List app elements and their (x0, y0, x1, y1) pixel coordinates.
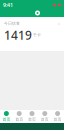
staticText: 首页 (15, 117, 23, 122)
staticText: 首页 (41, 117, 49, 122)
staticText: 首页 (28, 117, 36, 122)
staticText: 9:41 (3, 1, 13, 9)
staticText: › (58, 20, 60, 27)
staticText: 今日饮食 (4, 21, 20, 26)
staticText: 首页 (2, 117, 10, 122)
staticText: 1419 (4, 27, 32, 43)
staticText: 千卡 (33, 33, 41, 37)
staticText: 首页 (54, 117, 62, 122)
